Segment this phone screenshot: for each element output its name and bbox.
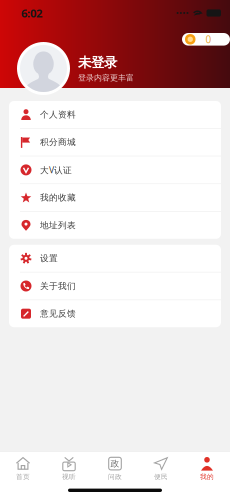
staticText: 大V认证 [40, 164, 72, 176]
staticText: 设置 [40, 253, 58, 264]
staticText: 关于我们 [40, 280, 76, 291]
staticText: 个人资料 [40, 109, 76, 120]
staticText: 视听 [62, 473, 76, 481]
staticText: 政 [110, 458, 119, 469]
staticText: 地址列表 [40, 220, 76, 231]
button[interactable]: 首页 [0, 452, 46, 485]
button[interactable]: 0 [182, 33, 230, 46]
button[interactable]: 关于我们 [9, 272, 221, 299]
button[interactable]: 意见反馈 [9, 300, 221, 327]
button[interactable]: 便民 [138, 452, 184, 485]
staticText: 未登录 [78, 54, 117, 71]
staticText: 我的 [200, 473, 214, 481]
button[interactable]: 我的 [184, 452, 230, 485]
staticText: 首页 [16, 473, 30, 481]
staticText: 0 [205, 32, 211, 46]
button[interactable]: 个人资料 [9, 101, 221, 128]
staticText: 问政 [108, 473, 122, 481]
button[interactable]: 视听 [46, 452, 92, 485]
staticText: 我的收藏 [40, 192, 76, 203]
staticText: 积分商城 [40, 137, 76, 148]
button[interactable]: 我的收藏 [9, 184, 221, 211]
staticText: 登录内容更丰富 [78, 73, 134, 83]
staticText: 6:02 [21, 5, 42, 21]
button[interactable]: 设置 [9, 245, 221, 272]
button[interactable]: 大V认证 [9, 156, 221, 183]
staticText: 便民 [154, 473, 168, 481]
button[interactable]: 政 [92, 452, 138, 485]
button[interactable]: 积分商城 [9, 129, 221, 156]
button[interactable]: 地址列表 [9, 212, 221, 239]
staticText: 意见反馈 [40, 308, 76, 319]
